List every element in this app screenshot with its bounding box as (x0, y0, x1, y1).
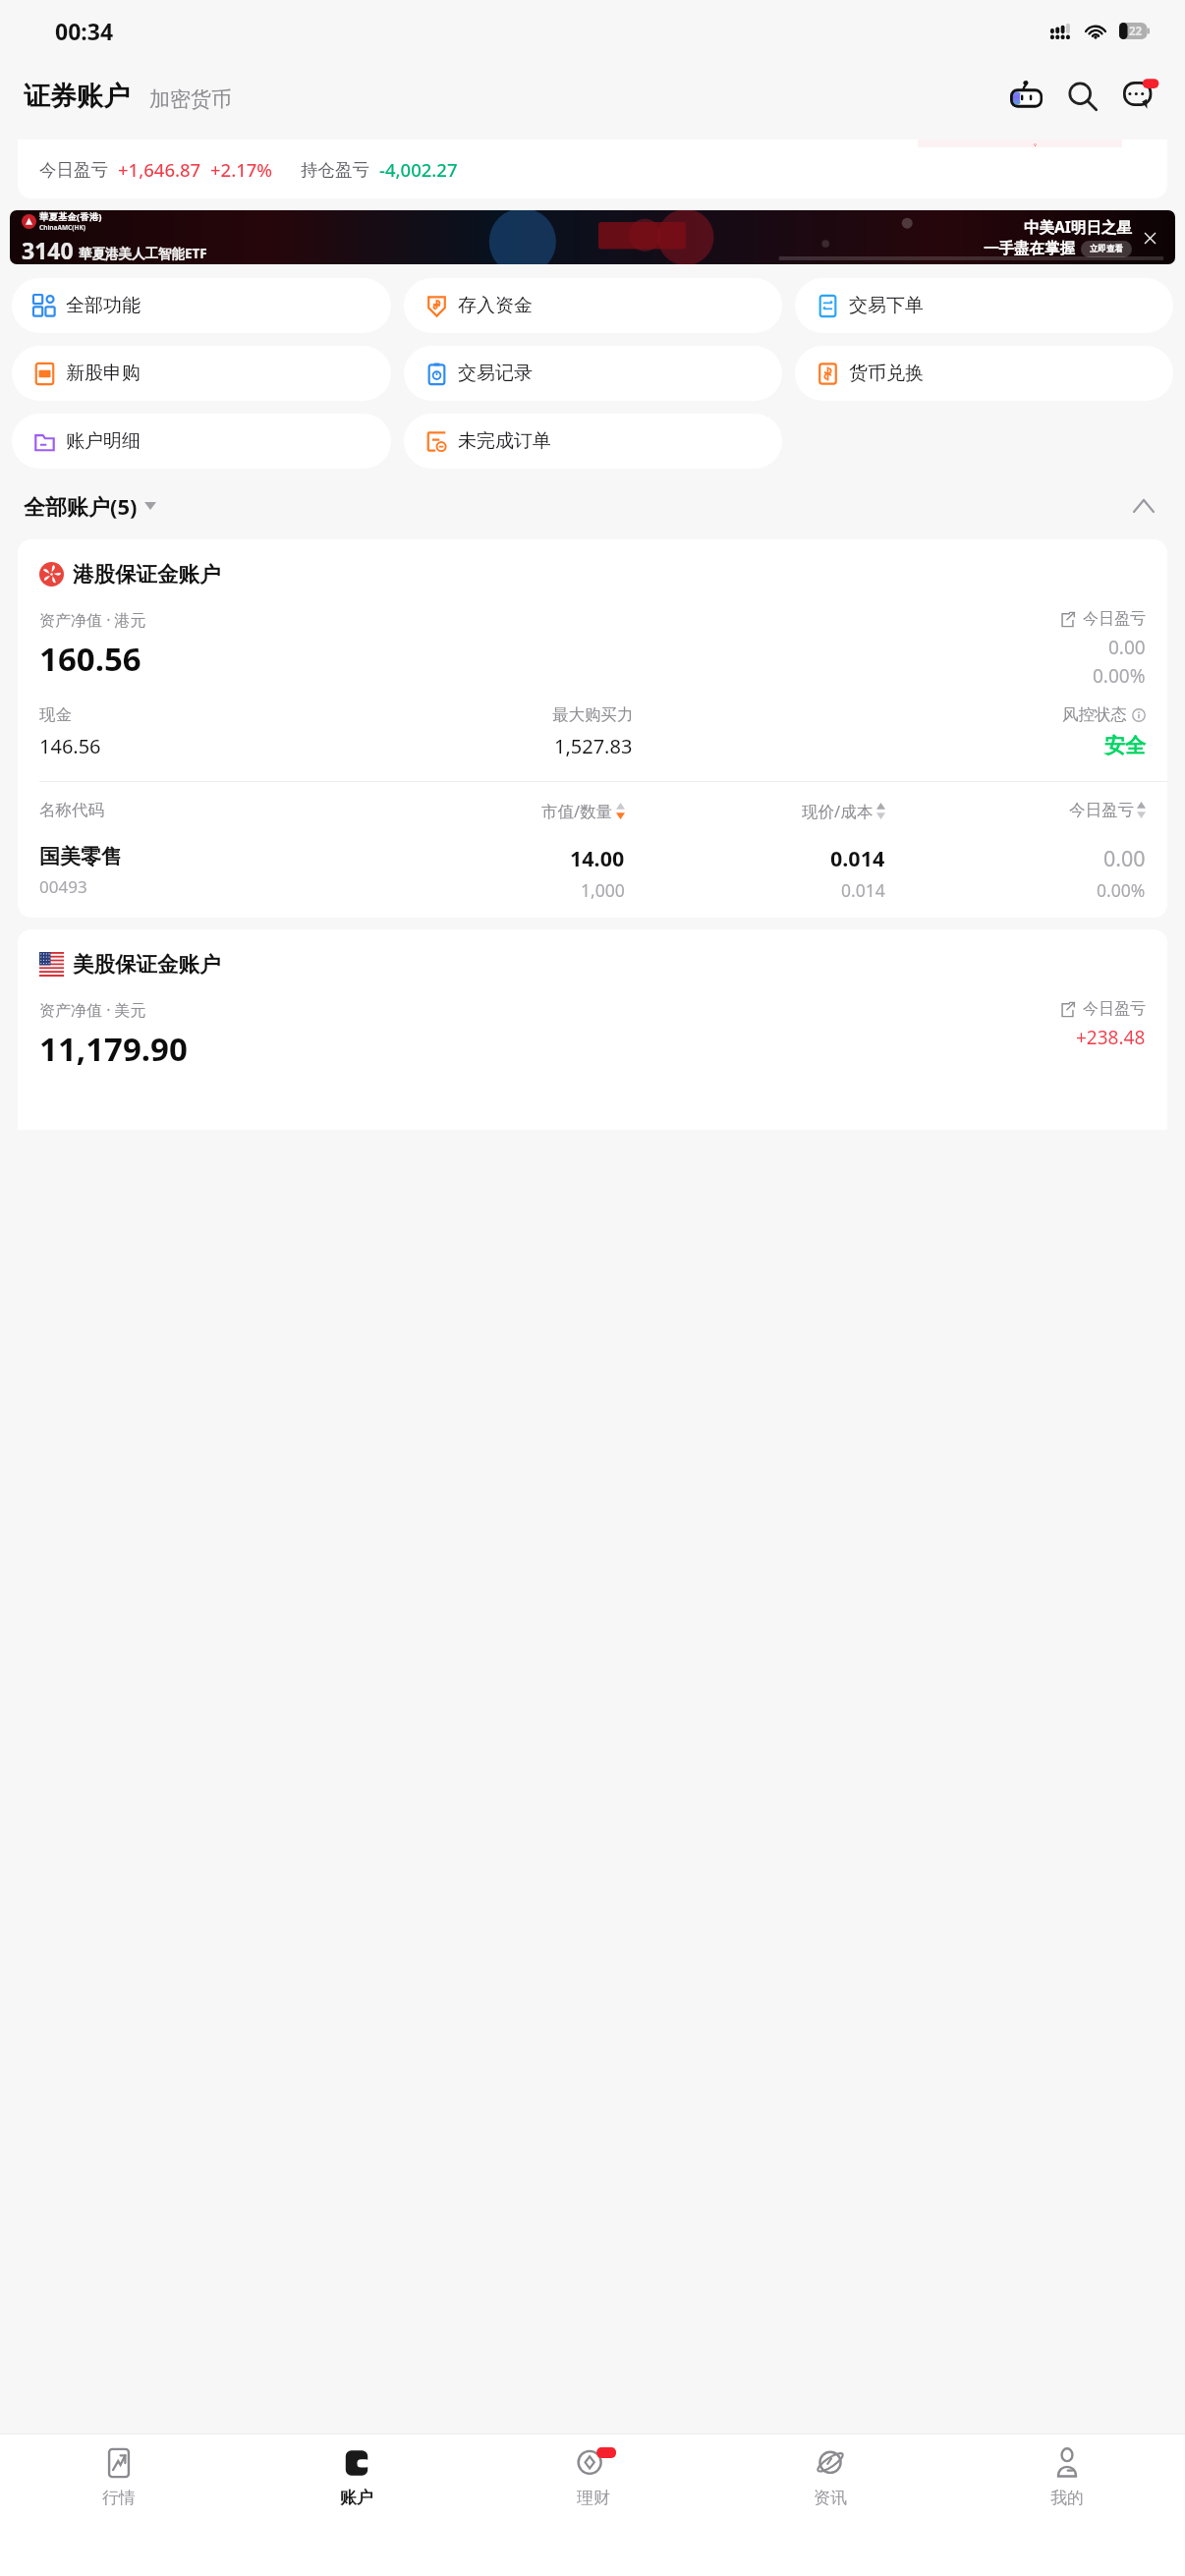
staticText: 146.56 (39, 733, 101, 759)
staticText: ChinaAMC(HK) (39, 223, 85, 232)
staticText: 00:34 (55, 16, 114, 46)
button[interactable]: Messages, 99+ unread (1118, 74, 1163, 119)
staticText: 未完成订单 (458, 429, 551, 453)
button[interactable]: 交易下单 (795, 278, 1173, 333)
staticText: 3140 (22, 235, 74, 264)
button[interactable]: ᵛ (18, 140, 1167, 198)
staticText: 我的 (1050, 2488, 1084, 2508)
button[interactable]: 货币兑换 (795, 346, 1173, 401)
staticText: 现金 (39, 704, 72, 725)
button[interactable]: 市值/数量 (365, 800, 625, 822)
staticText: 一手盡在掌握 (984, 239, 1075, 258)
staticText: +1,646.87 (118, 157, 201, 182)
button[interactable]: 账户明细 (12, 414, 391, 469)
staticText: 00493 (39, 875, 87, 898)
button[interactable]: 现价/成本 (625, 800, 885, 822)
staticText: 全部账户(5) (24, 491, 138, 521)
button[interactable]: 今日盈亏 (885, 800, 1146, 820)
staticText: 国美零售 (39, 844, 122, 869)
button[interactable]: 我的 (948, 2435, 1185, 2576)
button[interactable]: 理财 (475, 2435, 711, 2576)
staticText: 最大购买力 (552, 704, 634, 725)
button[interactable]: 交易记录 (404, 346, 782, 401)
staticText: 交易记录 (458, 362, 533, 385)
staticText: 0.00% (1097, 878, 1146, 902)
button[interactable]: 新股申购 (12, 346, 391, 401)
staticText: 0.00% (1093, 663, 1146, 689)
staticText: 安全 (1104, 733, 1146, 758)
staticText: 资产净值 · 美元 (39, 999, 146, 1021)
button[interactable]: 加密货币 (149, 86, 232, 113)
staticText: 0.014 (830, 844, 885, 872)
staticText: 资讯 (814, 2488, 847, 2508)
staticText: +238.48 (1076, 1025, 1146, 1050)
button[interactable]: 行情 (0, 2435, 238, 2576)
button[interactable]: 美股保证金账户 (18, 929, 1167, 1130)
staticText: 市值/数量 (541, 800, 613, 822)
staticText: 理财 (577, 2488, 610, 2508)
staticText: 美股保证金账户 (73, 951, 221, 978)
staticText: 1,527.83 (554, 733, 633, 759)
button[interactable]: 未完成订单 (404, 414, 782, 469)
staticText: 港股保证金账户 (73, 561, 221, 588)
staticText: 行情 (102, 2488, 136, 2508)
button[interactable]: Collapse (1126, 488, 1161, 524)
staticText: 中美AI明日之星 (1024, 216, 1132, 237)
staticText: 货币兑换 (849, 362, 924, 385)
staticText: 華夏港美人工智能ETF (79, 245, 207, 262)
staticText: 14.00 (570, 844, 625, 872)
button[interactable]: 账户 (238, 2435, 475, 2576)
button[interactable]: Close ad (1140, 228, 1159, 248)
staticText: 交易下单 (849, 294, 924, 317)
staticText: 全部功能 (66, 294, 141, 317)
button[interactable]: 证券账户 (24, 80, 130, 113)
button[interactable]: 立即查看 (1090, 244, 1123, 254)
staticText: 加密货币 (149, 86, 232, 112)
staticText: 0.00 (1103, 844, 1146, 872)
button[interactable]: 全部账户(5) (24, 491, 156, 521)
button[interactable]: 華夏基金(香港) (10, 210, 1175, 264)
button[interactable]: AI assistant (1004, 75, 1047, 118)
staticText: 证券账户 (24, 80, 130, 113)
staticText: +2.17% (210, 157, 273, 182)
staticText: 0.00 (1108, 635, 1146, 660)
staticText: 存入资金 (458, 294, 533, 317)
staticText: 风控状态 (1062, 704, 1127, 725)
staticText: 11,179.90 (39, 1027, 188, 1071)
staticText: ᵛ (1034, 140, 1037, 151)
staticText: 账户明细 (66, 429, 141, 453)
staticText: 资产净值 · 港元 (39, 609, 146, 631)
staticText: 现价/成本 (802, 800, 874, 822)
staticText: 今日盈亏 (1083, 609, 1146, 629)
staticText: 0.014 (841, 878, 885, 902)
button[interactable]: 港股保证金账户 (18, 539, 1167, 918)
staticText: 今日盈亏 (1069, 800, 1134, 820)
staticText: 160.56 (39, 637, 141, 681)
button[interactable]: 资讯 (711, 2435, 948, 2576)
staticText: 名称代码 (39, 800, 365, 820)
staticText: -4,002.27 (379, 157, 458, 182)
staticText: 1,000 (581, 878, 625, 902)
staticText: 持仓盈亏 (301, 159, 369, 181)
staticText: 账户 (340, 2488, 373, 2508)
staticText: 22 (1129, 24, 1143, 39)
staticText: 今日盈亏 (39, 159, 108, 181)
button[interactable]: 全部功能 (12, 278, 391, 333)
staticText: 立即查看 (1090, 244, 1123, 254)
staticText: 新股申购 (66, 362, 141, 385)
button[interactable]: 存入资金 (404, 278, 782, 333)
staticText: 今日盈亏 (1083, 999, 1146, 1019)
staticText: 華夏基金(香港) (39, 210, 102, 223)
button[interactable]: Search (1061, 75, 1104, 118)
